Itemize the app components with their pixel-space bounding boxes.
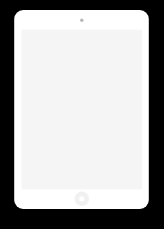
button[interactable]: Tablet device illustration bbox=[0, 0, 164, 229]
